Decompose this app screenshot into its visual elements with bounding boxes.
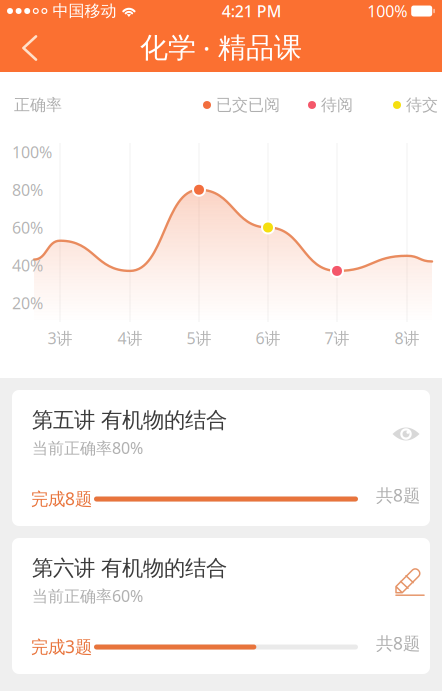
staticText: 4讲	[117, 327, 142, 349]
staticText: 80%	[12, 179, 43, 200]
staticText: ·	[203, 29, 211, 67]
staticText: 完成8题	[31, 487, 92, 510]
staticText: 6讲	[255, 327, 280, 349]
button[interactable]: 第五讲 有机物的结合	[12, 390, 430, 526]
staticText: 100%	[367, 0, 407, 22]
staticText: 8讲	[394, 327, 419, 349]
staticText: 待交	[406, 95, 438, 115]
staticText: 正确率	[14, 95, 62, 115]
staticText: 当前正确率80%	[32, 437, 143, 458]
staticText: 4:21 PM	[222, 0, 282, 22]
staticText: 共8题	[376, 631, 420, 654]
button[interactable]: Back	[8, 26, 52, 70]
button[interactable]: 第六讲 有机物的结合	[12, 538, 430, 674]
staticText: 3讲	[47, 327, 72, 349]
staticText: 待阅	[321, 95, 353, 115]
staticText: 60%	[12, 217, 43, 238]
staticText: 中国移动	[47, 1, 116, 21]
staticText: 第五讲 有机物的结合	[32, 407, 227, 433]
staticText: 完成3题	[31, 635, 92, 658]
staticText: 100%	[12, 141, 52, 163]
staticText: 40%	[12, 255, 43, 276]
staticText: 当前正确率60%	[32, 585, 143, 606]
staticText: 已交已阅	[216, 95, 280, 115]
staticText: 精品课	[218, 31, 302, 65]
staticText: 化学	[140, 31, 196, 65]
staticText: 共8题	[376, 483, 420, 506]
staticText: 7讲	[324, 327, 349, 349]
staticText: 5讲	[186, 327, 211, 349]
staticText: 20%	[12, 292, 43, 314]
staticText: 第六讲 有机物的结合	[32, 555, 227, 581]
